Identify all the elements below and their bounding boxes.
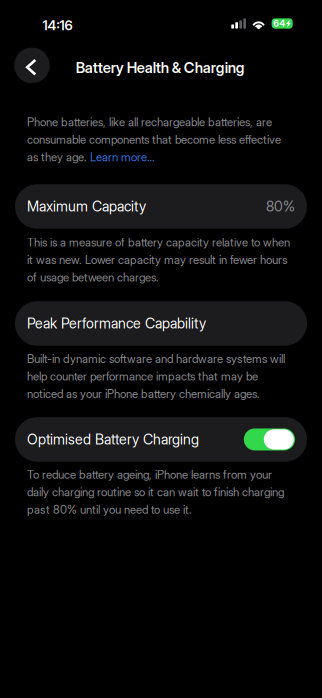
staticText: To reduce battery ageing, iPhone learns … — [27, 468, 284, 516]
button[interactable]: Peak Performance Capability — [15, 301, 307, 346]
button[interactable]: Optimised Battery Charging — [15, 417, 307, 462]
button[interactable]: Phone batteries, like all rechargeable b… — [27, 115, 292, 164]
button[interactable]: Back — [14, 48, 50, 83]
staticText: Phone batteries, like all rechargeable b… — [27, 115, 281, 164]
staticText: Built-in dynamic software and hardware s… — [27, 352, 285, 401]
staticText: Peak Performance Capability — [27, 315, 206, 332]
staticText: 14:16 — [42, 17, 72, 33]
button[interactable]: Maximum Capacity — [15, 184, 307, 229]
staticText: 64 — [273, 18, 285, 29]
staticText: 80% — [266, 198, 295, 215]
staticText: This is a measure of battery capacity re… — [27, 235, 290, 284]
staticText: Maximum Capacity — [27, 198, 146, 215]
staticText: Battery Health & Charging — [76, 59, 245, 76]
staticText: Optimised Battery Charging — [27, 431, 199, 448]
